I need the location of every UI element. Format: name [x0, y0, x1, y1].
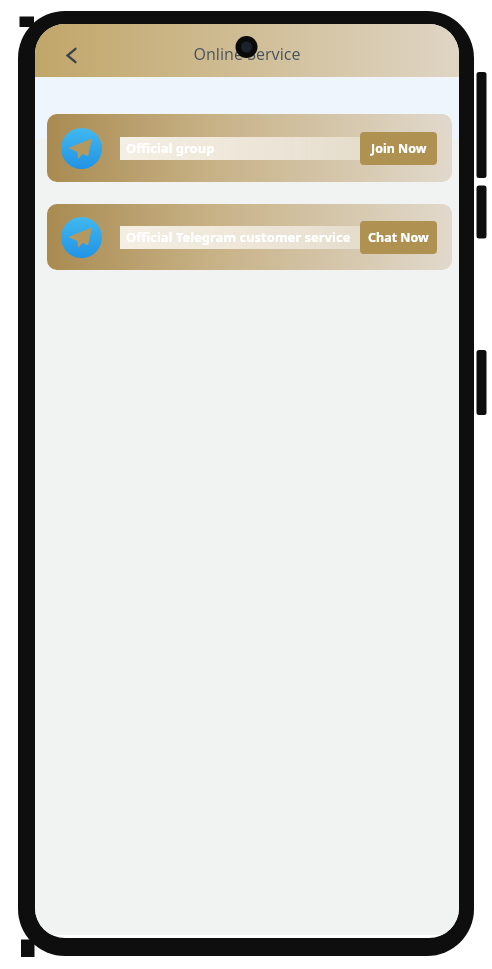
button[interactable]: Chat Now	[360, 221, 437, 254]
staticText: Online Service	[193, 43, 301, 65]
staticText: Official Telegram customer service	[126, 228, 351, 246]
button[interactable]: Official Telegram customer service	[47, 204, 452, 270]
staticText: Chat Now	[368, 229, 429, 246]
staticText: Official group	[126, 139, 215, 157]
staticText: Join Now	[371, 140, 427, 157]
button[interactable]: Join Now	[360, 132, 437, 165]
button[interactable]: Official group	[47, 114, 452, 182]
button[interactable]	[57, 41, 85, 69]
